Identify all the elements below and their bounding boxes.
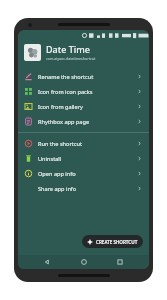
button[interactable]: CREATE SHORTCUT	[82, 235, 143, 248]
staticText: Rhythbox app page	[38, 118, 137, 126]
staticText: Share app info	[38, 185, 137, 193]
button[interactable]: Icon from icon packs	[18, 84, 149, 99]
button[interactable]: Share app info	[18, 181, 149, 196]
staticText: CREATE SHORTCUT	[96, 239, 138, 245]
staticText: Open app info	[38, 170, 137, 178]
staticText: Uninstall	[38, 155, 137, 163]
staticText: com.aiyanc.datetimeshortcut	[46, 56, 96, 61]
staticText: Run the shortcut	[38, 140, 137, 148]
button[interactable]: Uninstall	[18, 151, 149, 166]
button[interactable]: Rename the shortcut	[18, 69, 149, 84]
staticText: Icon from gallery	[38, 103, 137, 111]
button[interactable]: Open app info	[18, 166, 149, 181]
button[interactable]: Recent apps	[113, 255, 127, 269]
staticText: Date Time	[46, 43, 90, 55]
button[interactable]: Home	[77, 255, 91, 269]
button[interactable]: Icon from gallery	[18, 99, 149, 114]
button[interactable]: Back	[40, 255, 54, 269]
button[interactable]: Run the shortcut	[18, 136, 149, 151]
staticText: Rename the shortcut	[38, 73, 137, 81]
button[interactable]: Rhythbox app page	[18, 114, 149, 129]
staticText: Icon from icon packs	[38, 88, 137, 96]
